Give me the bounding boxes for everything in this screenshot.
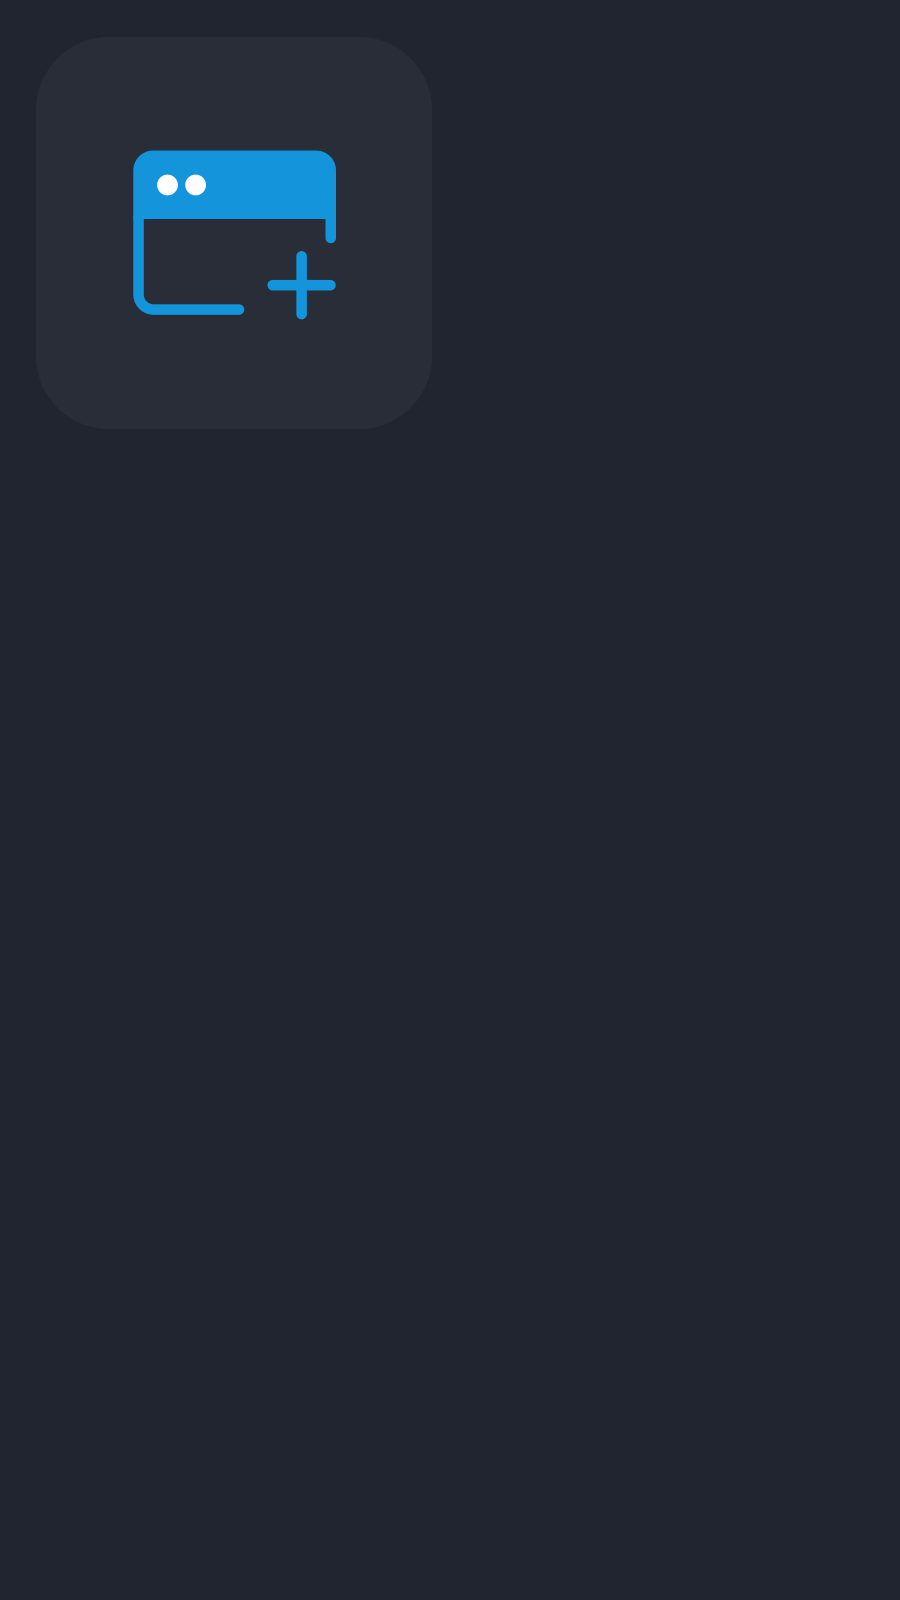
button[interactable]: New Window — [36, 37, 432, 429]
